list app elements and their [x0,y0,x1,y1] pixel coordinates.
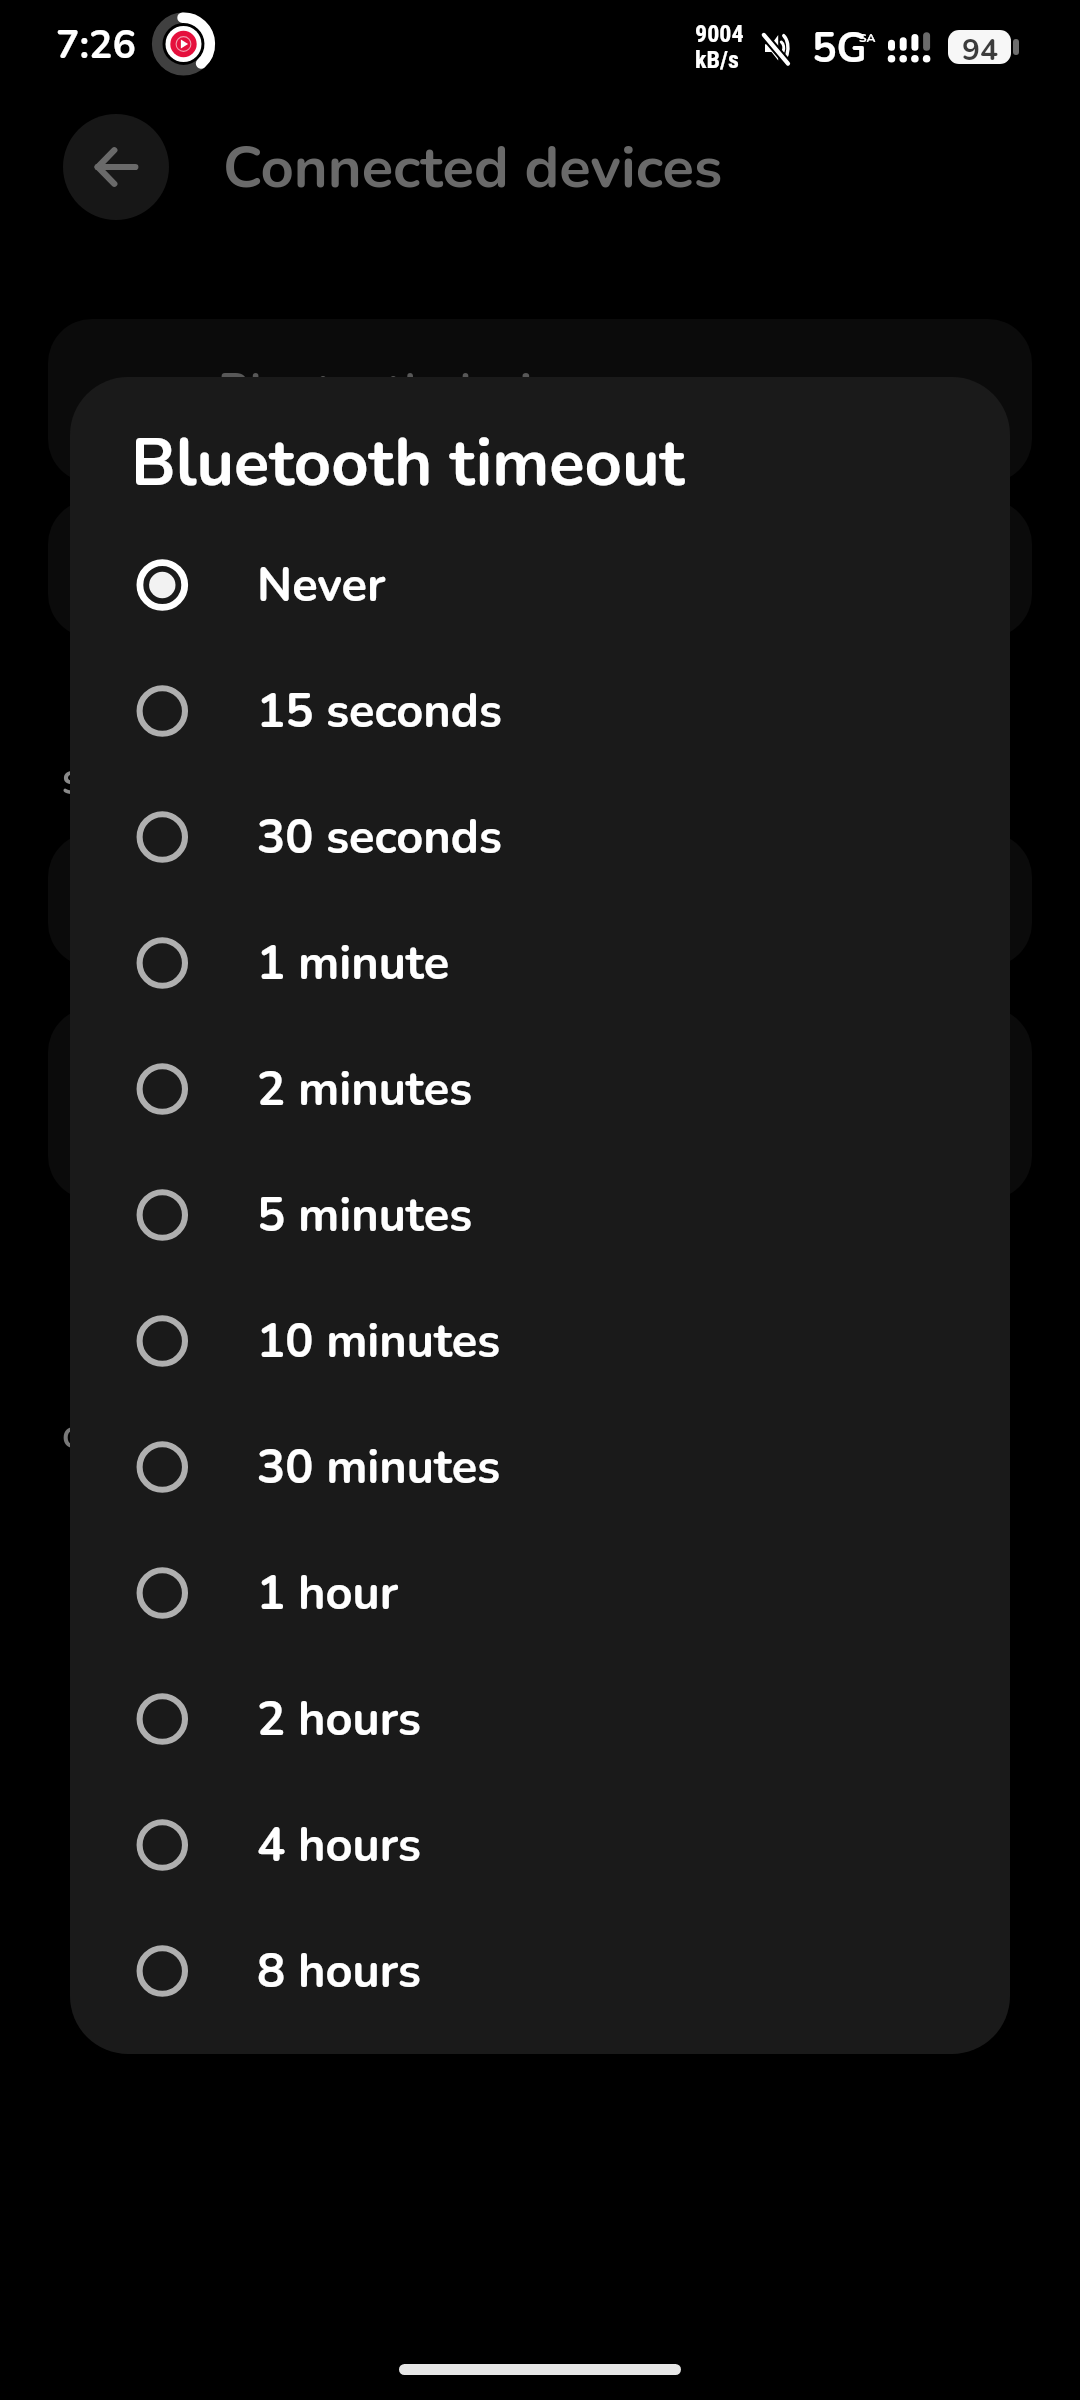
button[interactable]: 2 minutes [70,1026,1010,1152]
staticText: 4 hours [257,1813,421,1877]
staticText: Saved devices [62,762,271,806]
button[interactable]: 2 hours [70,1656,1010,1782]
staticText: 94 [962,30,998,64]
button[interactable]: 15 seconds [70,648,1010,774]
staticText: kB/s [695,46,739,74]
staticText: 1 minute [257,931,450,995]
staticText: 5 minutes [257,1183,473,1247]
staticText: 1 hour [257,1561,399,1625]
staticText: Connected devices [223,128,723,207]
button[interactable]: 5 minutes [70,1152,1010,1278]
staticText: 7:26 [56,19,136,72]
staticText: Bluetooth devices [218,359,601,422]
staticText: SA [859,30,876,46]
staticText: Never [257,553,386,617]
button[interactable]: 4 hours [70,1782,1010,1908]
staticText: 10 minutes [257,1309,501,1373]
button[interactable]: 8 hours [70,1908,1010,2034]
button[interactable]: 30 seconds [70,774,1010,900]
staticText: 30 seconds [257,805,502,869]
staticText: 30 minutes [257,1435,501,1499]
button[interactable]: 1 hour [70,1530,1010,1656]
staticText: 5G [812,21,867,77]
button[interactable]: Back [63,114,169,220]
staticText: 8 hours [257,1939,421,2003]
button[interactable]: 30 minutes [70,1404,1010,1530]
staticText: Bluetooth timeout [131,419,685,508]
button[interactable]: 10 minutes [70,1278,1010,1404]
staticText: 9004 [695,20,744,48]
staticText: 15 seconds [257,679,502,743]
button[interactable]: 1 minute [70,900,1010,1026]
staticText: Connection preferences [62,1418,390,1459]
staticText: 2 minutes [257,1057,473,1121]
button[interactable]: Never [70,522,1010,648]
staticText: 2 hours [257,1687,421,1751]
